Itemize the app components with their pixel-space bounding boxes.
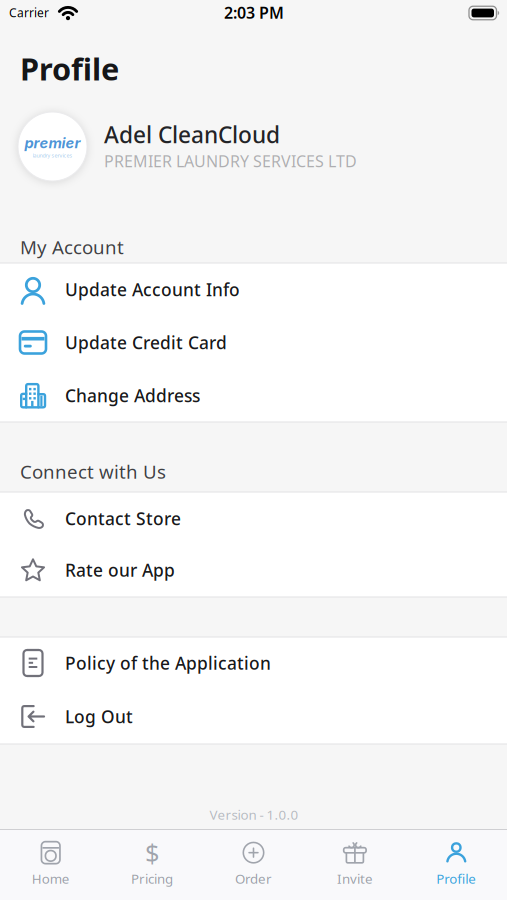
staticText: 2:03 PM xyxy=(224,2,284,23)
button[interactable]: premier xyxy=(0,106,507,186)
staticText: Invite xyxy=(337,870,373,887)
staticText: Update Credit Card xyxy=(65,331,227,354)
button[interactable]: Profile xyxy=(406,833,507,895)
staticText: Rate our App xyxy=(65,558,175,581)
staticText: Profile xyxy=(436,870,476,887)
button[interactable]: Invite xyxy=(304,833,405,895)
staticText: Change Address xyxy=(65,384,200,407)
staticText: premier xyxy=(24,134,80,152)
button[interactable]: Home xyxy=(0,833,101,895)
staticText: $ xyxy=(145,836,159,869)
staticText: Log Out xyxy=(65,705,133,728)
button[interactable]: Change Address xyxy=(0,369,507,422)
button[interactable]: Policy of the Application xyxy=(0,636,507,689)
staticText: Order xyxy=(235,870,272,887)
staticText: Version - 1.0.0 xyxy=(209,806,298,823)
button[interactable]: $ xyxy=(102,833,203,895)
button[interactable]: Rate our App xyxy=(0,544,507,596)
staticText: Connect with Us xyxy=(20,459,166,484)
button[interactable]: Contact Store xyxy=(0,492,507,544)
button[interactable]: Log Out xyxy=(0,690,507,743)
button[interactable]: Update Credit Card xyxy=(0,316,507,369)
staticText: PREMIER LAUNDRY SERVICES LTD xyxy=(104,150,357,172)
staticText: Policy of the Application xyxy=(65,651,271,674)
staticText: Update Account Info xyxy=(65,278,240,301)
staticText: Home xyxy=(32,870,70,887)
staticText: Profile xyxy=(20,48,119,89)
button[interactable]: Update Account Info xyxy=(0,263,507,316)
staticText: Pricing xyxy=(131,870,173,887)
staticText: My Account xyxy=(20,235,124,259)
staticText: Contact Store xyxy=(65,507,181,530)
staticText: Carrier xyxy=(9,4,49,20)
staticText: laundry services xyxy=(32,152,72,159)
staticText: Adel CleanCloud xyxy=(104,119,280,149)
button[interactable]: Order xyxy=(203,833,304,895)
